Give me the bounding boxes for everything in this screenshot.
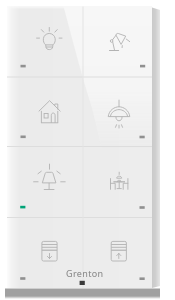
- button[interactable]: Table lamp: [7, 146, 83, 217]
- button[interactable]: Dining room: [83, 146, 153, 217]
- button[interactable]: Blind down: [7, 217, 83, 288]
- button[interactable]: Blind up: [83, 217, 153, 288]
- button[interactable]: Desk lamp: [83, 7, 153, 77]
- button[interactable]: Ceiling light: [7, 7, 83, 77]
- staticText: Grenton: [66, 267, 104, 279]
- button[interactable]: Kitchen pendant: [83, 77, 153, 147]
- button[interactable]: All lights: [7, 77, 83, 147]
